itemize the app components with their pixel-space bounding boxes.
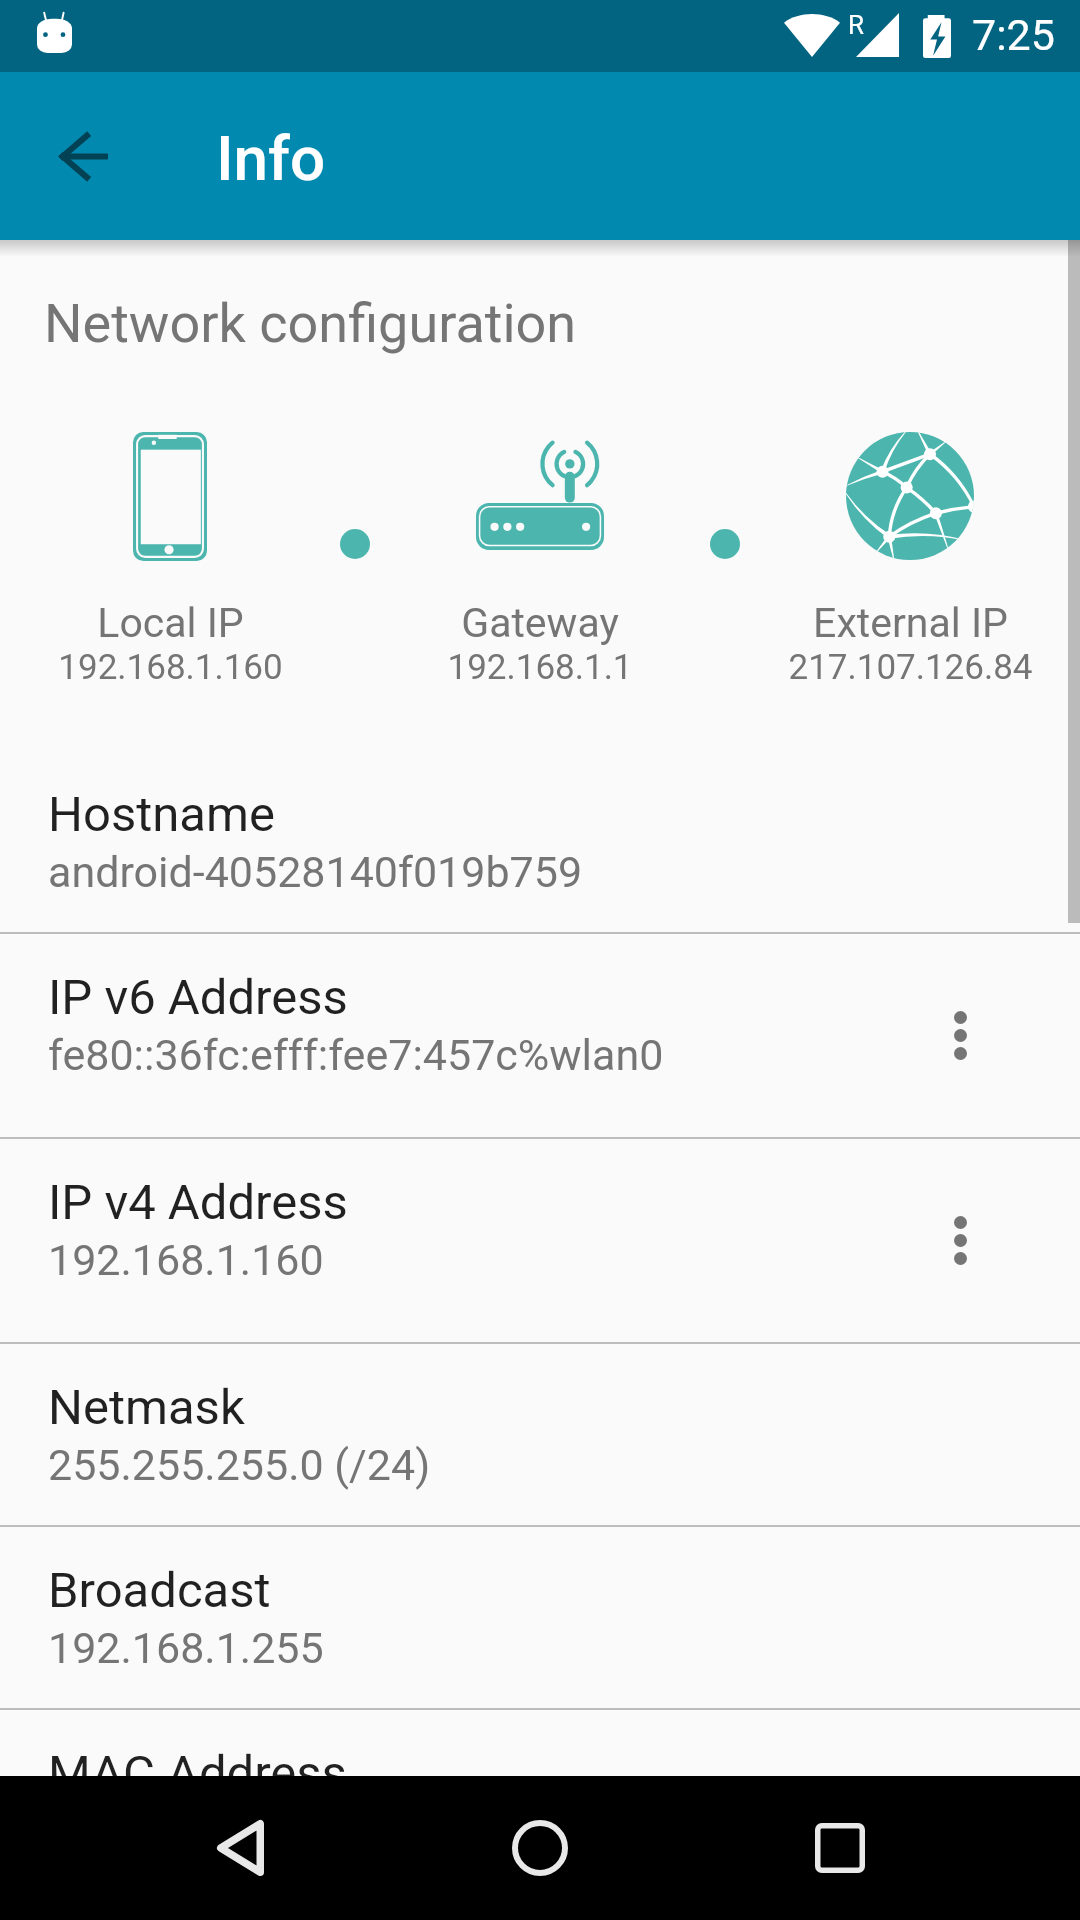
staticText: Network configuration (44, 292, 577, 355)
button[interactable]: Back (168, 1776, 312, 1920)
button[interactable]: IP v4 Address (0, 1139, 1080, 1342)
button[interactable]: Home (468, 1776, 612, 1920)
button[interactable]: Hostname (0, 751, 1080, 932)
staticText: 192.168.1.160 (58, 647, 283, 683)
button[interactable]: Broadcast (0, 1527, 1080, 1708)
button[interactable]: External IP (730, 431, 1080, 683)
staticText: Hostname (48, 786, 275, 843)
button[interactable]: Local IP (0, 431, 350, 683)
staticText: 255.255.255.0 (/24) (48, 1440, 431, 1490)
staticText: Netmask (48, 1379, 245, 1436)
button[interactable]: More options (888, 934, 1032, 1137)
button[interactable]: IP v6 Address (0, 934, 1080, 1137)
staticText: R (848, 10, 865, 40)
staticText: IP v4 Address (48, 1174, 348, 1231)
staticText: Gateway (461, 599, 619, 647)
staticText: 192.168.1.160 (48, 1235, 324, 1285)
staticText: 7:25 (972, 10, 1055, 60)
staticText: IP v6 Address (48, 969, 348, 1026)
staticText: MAC Address (48, 1745, 347, 1776)
staticText: 192.168.1.255 (48, 1623, 324, 1673)
staticText: Broadcast (48, 1562, 271, 1619)
staticText: External IP (813, 599, 1008, 647)
staticText: Local IP (97, 599, 244, 647)
button[interactable]: Netmask (0, 1344, 1080, 1525)
button[interactable]: Back (32, 104, 136, 208)
staticText: Info (216, 122, 326, 195)
button[interactable]: Recents (768, 1776, 912, 1920)
staticText: fe80::36fc:efff:fee7:457c%wlan0 (48, 1030, 664, 1080)
staticText: 217.107.126.84 (788, 647, 1033, 683)
button[interactable]: More options (888, 1139, 1032, 1342)
button[interactable]: Gateway (360, 431, 720, 683)
staticText: android-40528140f019b759 (48, 847, 583, 897)
button[interactable]: MAC Address (0, 1710, 1080, 1776)
staticText: 192.168.1.1 (447, 647, 633, 683)
